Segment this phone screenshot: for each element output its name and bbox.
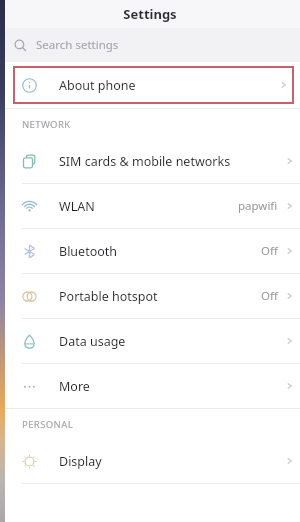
staticText: PERSONAL (22, 418, 74, 431)
staticText: WLAN (59, 198, 95, 215)
button[interactable]: Search settings (0, 28, 300, 62)
staticText: About phone (59, 77, 136, 94)
staticText: Data usage (59, 333, 126, 350)
button[interactable]: More (0, 364, 300, 408)
staticText: Settings (123, 5, 177, 23)
button[interactable]: WLAN (0, 184, 300, 228)
button[interactable]: About phone (13, 66, 294, 104)
button[interactable]: Bluetooth (0, 229, 300, 273)
button[interactable]: SIM cards & mobile networks (0, 139, 300, 183)
button[interactable]: Portable hotspot (0, 274, 300, 318)
staticText: SIM cards & mobile networks (59, 153, 231, 170)
staticText: NETWORK (22, 118, 71, 131)
staticText: Bluetooth (59, 243, 118, 260)
staticText: Off (261, 288, 278, 304)
staticText: Display (59, 453, 102, 470)
staticText: papwifi (238, 198, 278, 214)
button[interactable]: Display (0, 439, 300, 483)
staticText: Search settings (36, 37, 119, 53)
staticText: Off (261, 243, 278, 259)
staticText: Portable hotspot (59, 288, 158, 305)
button[interactable]: Data usage (0, 319, 300, 363)
staticText: More (59, 378, 90, 395)
